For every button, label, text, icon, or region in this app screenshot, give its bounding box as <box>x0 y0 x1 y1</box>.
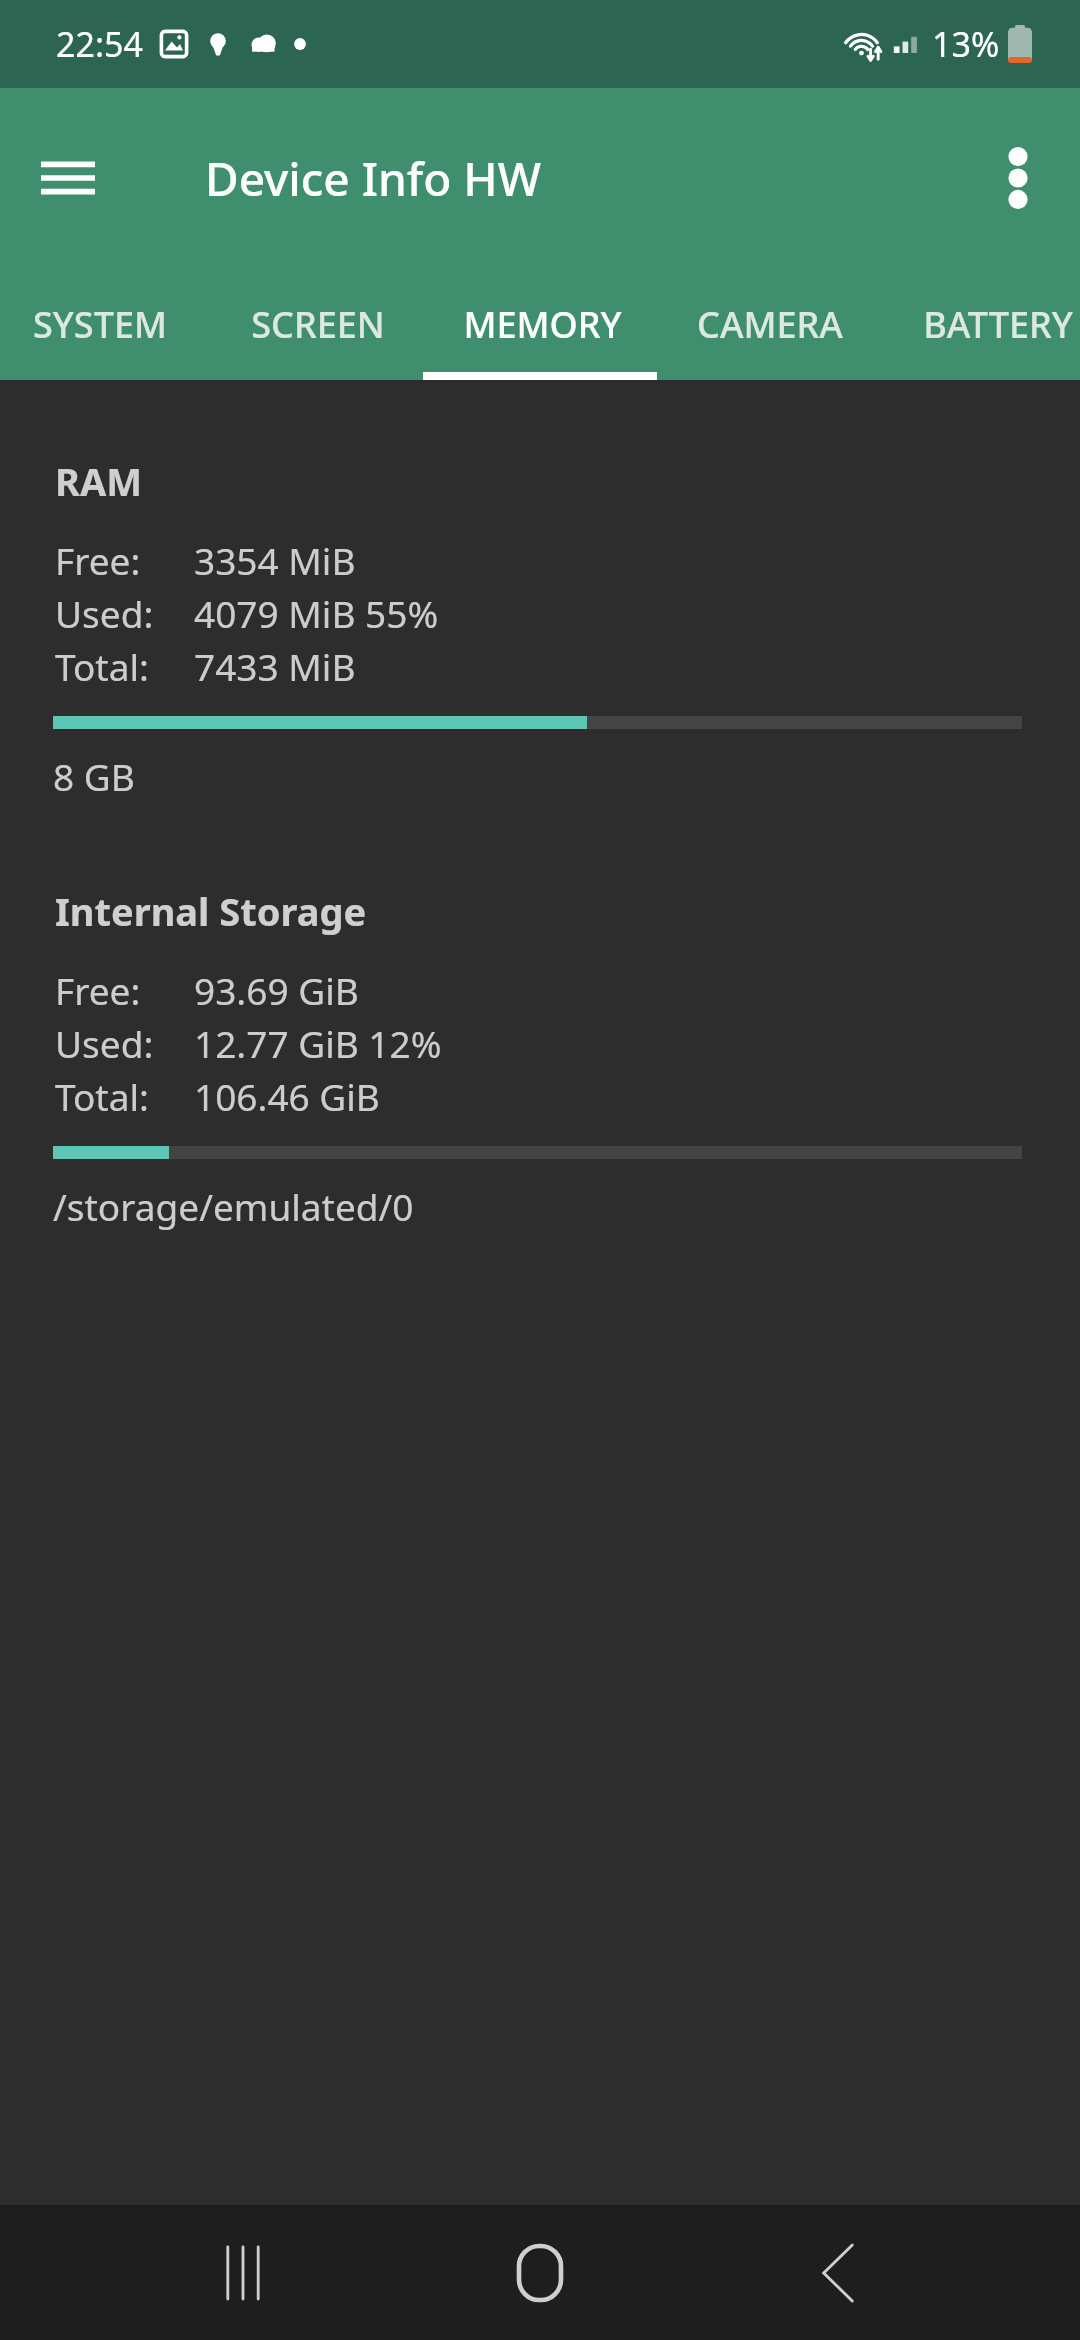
staticText: 12.77 GiB 12% <box>194 1018 442 1068</box>
button[interactable]: CAMERA <box>690 268 850 380</box>
button[interactable]: Home <box>485 2218 595 2328</box>
staticText: Internal Storage <box>55 885 367 937</box>
staticText: 7433 MiB <box>194 641 356 691</box>
staticText: BATTERY <box>923 300 1073 349</box>
staticText: /storage/emulated/0 <box>53 1181 414 1231</box>
staticText: 8 GB <box>53 751 135 801</box>
button[interactable]: More options <box>978 138 1058 218</box>
staticText: 4079 MiB 55% <box>194 588 439 638</box>
staticText: Device Info HW <box>205 147 542 210</box>
staticText: CAMERA <box>697 300 843 349</box>
staticText: Free: <box>55 535 141 585</box>
staticText: 22:54 <box>56 21 143 67</box>
staticText: Total: <box>55 1071 149 1121</box>
staticText: 13% <box>932 21 1000 67</box>
staticText: 93.69 GiB <box>194 965 359 1015</box>
button[interactable]: SYSTEM <box>20 268 180 380</box>
button[interactable]: Open navigation drawer <box>28 138 108 218</box>
button[interactable]: SCREEN <box>245 268 390 380</box>
button[interactable]: BATTERY <box>915 268 1080 380</box>
button[interactable]: Back <box>783 2218 893 2328</box>
staticText: Used: <box>55 588 154 638</box>
staticText: SCREEN <box>251 300 385 349</box>
staticText: Used: <box>55 1018 154 1068</box>
staticText: 3354 MiB <box>194 535 356 585</box>
staticText: MEMORY <box>463 300 622 349</box>
button[interactable]: MEMORY <box>462 268 623 380</box>
staticText: SYSTEM <box>33 300 167 349</box>
staticText: 106.46 GiB <box>194 1071 380 1121</box>
staticText: RAM <box>55 455 143 507</box>
button[interactable]: Recent apps <box>188 2218 298 2328</box>
staticText: Free: <box>55 965 141 1015</box>
staticText: Total: <box>55 641 149 691</box>
